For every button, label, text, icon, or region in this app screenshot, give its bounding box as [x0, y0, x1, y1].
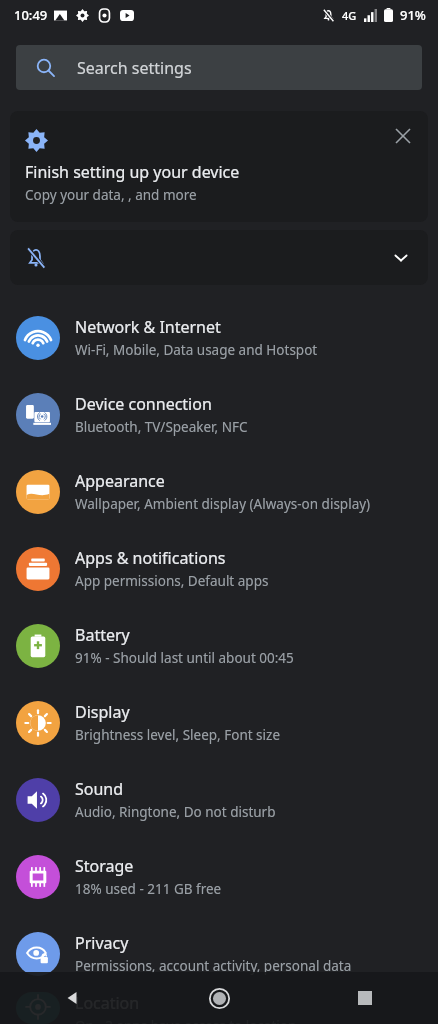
button[interactable]: Expand: [10, 230, 428, 285]
staticText: 10:49: [14, 6, 48, 24]
staticText: Audio, Ringtone, Do not disturb: [75, 803, 276, 821]
staticText: App permissions, Default apps: [75, 572, 269, 590]
button[interactable]: Dismiss: [386, 119, 420, 153]
button[interactable]: Storage: [0, 838, 438, 915]
button[interactable]: Home: [146, 972, 292, 1024]
staticText: Wi-Fi, Mobile, Data usage and Hotspot: [75, 341, 318, 359]
button[interactable]: Recent apps: [292, 972, 438, 1024]
staticText: Wallpaper, Ambient display (Always-on di…: [75, 495, 371, 513]
staticText: Privacy: [75, 932, 129, 954]
button[interactable]: Device connection: [0, 376, 438, 453]
staticText: Appearance: [75, 470, 165, 492]
staticText: Device connection: [75, 393, 212, 415]
button[interactable]: Sound: [0, 761, 438, 838]
staticText: Bluetooth, TV/Speaker, NFC: [75, 418, 248, 436]
button[interactable]: Apps & notifications: [0, 530, 438, 607]
staticText: Finish setting up your device: [25, 161, 240, 183]
staticText: Battery: [75, 624, 130, 646]
button[interactable]: Finish setting up your device: [10, 111, 428, 222]
staticText: Sound: [75, 778, 124, 800]
button[interactable]: Appearance: [0, 453, 438, 530]
button[interactable]: Expand: [384, 241, 418, 275]
button[interactable]: Location: [0, 992, 438, 1024]
staticText: Permissions, account activity, personal …: [75, 957, 352, 975]
staticText: Copy your data, , and more: [25, 186, 197, 204]
staticText: 18% used - 211 GB free: [75, 880, 222, 898]
staticText: Network & Internet: [75, 316, 221, 338]
button[interactable]: Battery: [0, 607, 438, 684]
button[interactable]: Privacy: [0, 915, 438, 992]
button[interactable]: Back: [0, 972, 146, 1024]
staticText: Display: [75, 701, 130, 723]
staticText: 4G: [342, 8, 357, 23]
staticText: 91%: [400, 6, 426, 24]
button[interactable]: Network & Internet: [0, 299, 438, 376]
staticText: 91% - Should last until about 00:45: [75, 649, 294, 667]
staticText: Apps & notifications: [75, 547, 226, 569]
button[interactable]: Display: [0, 684, 438, 761]
staticText: Brightness level, Sleep, Font size: [75, 726, 281, 744]
button[interactable]: Search settings: [16, 45, 422, 90]
staticText: Location: [75, 992, 140, 1014]
staticText: Storage: [75, 855, 134, 877]
staticText: Search settings: [77, 57, 192, 79]
